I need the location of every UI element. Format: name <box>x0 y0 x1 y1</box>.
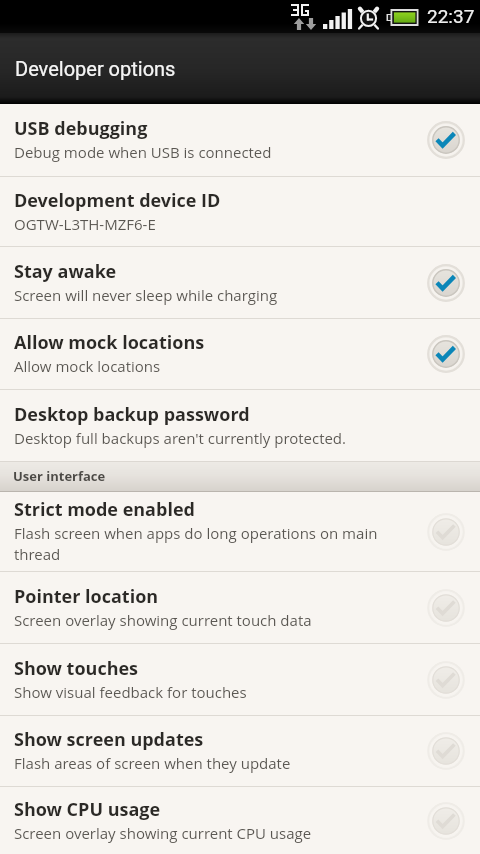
button[interactable]: Strict mode enabled <box>0 492 480 571</box>
button[interactable]: Show screen updates <box>0 716 480 786</box>
staticText: Strict mode enabled <box>14 497 195 522</box>
staticText: Stay awake <box>14 259 117 284</box>
staticText: Show touches <box>14 656 139 681</box>
staticText: Show CPU usage <box>14 797 161 822</box>
staticText: 22:37 <box>427 5 475 27</box>
staticText: Screen overlay showing current CPU usage <box>14 823 312 843</box>
staticText: Allow mock locations <box>14 356 161 376</box>
staticText: Pointer location <box>14 584 159 609</box>
staticText: Desktop full backups aren't currently pr… <box>14 428 347 448</box>
staticText: Show screen updates <box>14 727 204 752</box>
button[interactable]: Stay awake <box>0 247 480 318</box>
button[interactable]: Checked <box>424 261 468 305</box>
staticText: Show visual feedback for touches <box>14 682 247 702</box>
button[interactable]: Show touches <box>0 644 480 715</box>
button[interactable]: Development device ID <box>0 177 480 246</box>
staticText: OGTW-L3TH-MZF6-E <box>14 214 156 234</box>
staticText: Flash screen when apps do long operation… <box>14 523 404 565</box>
staticText: Debug mode when USB is connected <box>14 142 272 162</box>
button[interactable]: Show CPU usage <box>0 787 480 854</box>
button[interactable]: USB debugging <box>0 104 480 176</box>
button[interactable]: Allow mock locations <box>0 319 480 389</box>
staticText: Development device ID <box>14 188 221 213</box>
staticText: Screen will never sleep while charging <box>14 285 278 305</box>
staticText: Desktop backup password <box>14 402 250 427</box>
button[interactable]: Unchecked <box>424 729 468 773</box>
staticText: Screen overlay showing current touch dat… <box>14 610 312 630</box>
staticText: USB debugging <box>14 116 148 141</box>
button[interactable]: Checked <box>424 118 468 162</box>
staticText: Allow mock locations <box>14 330 205 355</box>
button[interactable]: Unchecked <box>424 510 468 554</box>
button[interactable]: Checked <box>424 332 468 376</box>
button[interactable]: Unchecked <box>424 799 468 843</box>
button[interactable]: Unchecked <box>424 586 468 630</box>
button[interactable]: Desktop backup password <box>0 390 480 461</box>
button[interactable]: Pointer location <box>0 572 480 643</box>
staticText: User interface <box>13 467 106 485</box>
staticText: Flash areas of screen when they update <box>14 753 291 773</box>
staticText: Developer options <box>15 57 176 80</box>
button[interactable]: Unchecked <box>424 658 468 702</box>
